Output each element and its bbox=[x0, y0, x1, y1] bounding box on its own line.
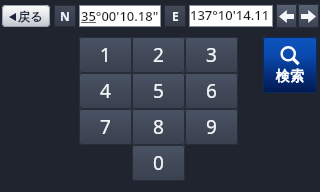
button[interactable]: Next bbox=[298, 4, 319, 28]
button[interactable]: 35°00'10.18" bbox=[80, 6, 160, 26]
staticText: 検索 bbox=[276, 68, 304, 86]
button[interactable]: 戻る bbox=[2, 5, 50, 27]
staticText: 9 bbox=[206, 114, 217, 140]
button[interactable]: 検索 bbox=[263, 37, 317, 93]
staticText: 137°10'14.11" bbox=[190, 6, 272, 26]
button[interactable]: Previous bbox=[276, 4, 297, 28]
staticText: 0 bbox=[153, 150, 164, 176]
button[interactable]: 2 bbox=[132, 37, 185, 73]
button[interactable]: 4 bbox=[79, 73, 132, 109]
button[interactable]: 5 bbox=[132, 73, 185, 109]
button[interactable]: 9 bbox=[185, 109, 238, 145]
staticText: N bbox=[60, 8, 70, 24]
staticText: 7 bbox=[100, 114, 111, 140]
staticText: 2 bbox=[153, 42, 164, 68]
button[interactable]: 6 bbox=[185, 73, 238, 109]
staticText: 3 bbox=[206, 42, 217, 68]
staticText: 8 bbox=[153, 114, 164, 140]
staticText: E bbox=[172, 8, 179, 24]
button[interactable]: 0 bbox=[132, 145, 185, 181]
staticText: 5 bbox=[153, 78, 164, 104]
button[interactable]: N bbox=[54, 5, 76, 27]
button[interactable]: 8 bbox=[132, 109, 185, 145]
button[interactable]: 7 bbox=[79, 109, 132, 145]
button[interactable]: 137°10'14.11" bbox=[190, 6, 272, 26]
button[interactable]: 3 bbox=[185, 37, 238, 73]
button[interactable]: E bbox=[164, 5, 186, 27]
staticText: 4 bbox=[100, 78, 111, 104]
staticText: 1 bbox=[100, 42, 111, 68]
staticText: 戻る bbox=[18, 9, 43, 24]
staticText: 6 bbox=[206, 78, 217, 104]
staticText: 35°00'10.18" bbox=[81, 7, 159, 25]
button[interactable]: 1 bbox=[79, 37, 132, 73]
